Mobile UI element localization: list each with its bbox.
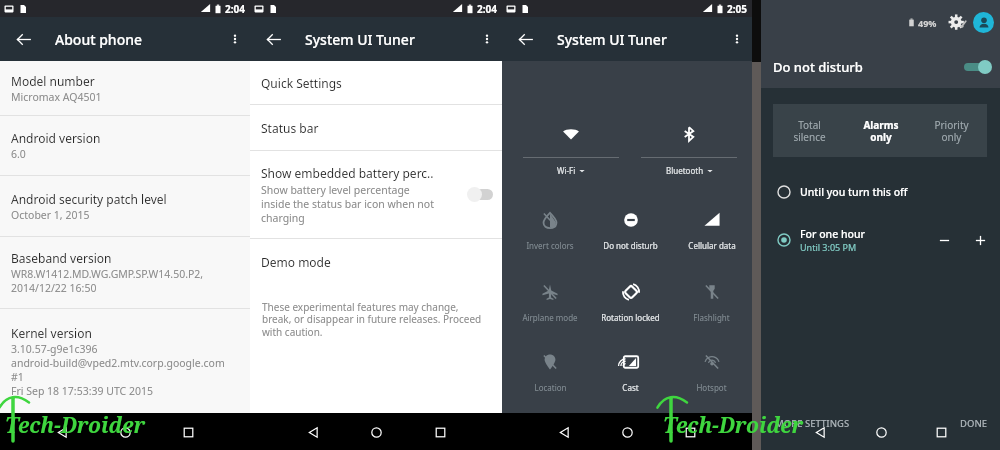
button[interactable]: More options bbox=[220, 17, 250, 61]
button[interactable]: Navigate up bbox=[508, 17, 542, 61]
button[interactable]: Rotation locked bbox=[590, 283, 671, 332]
staticText: Until 3:05 PM bbox=[800, 241, 857, 253]
staticText: Fri Sep 18 17:53:39 UTC 2015 bbox=[11, 384, 153, 398]
button[interactable]: Total silence bbox=[773, 104, 845, 157]
button[interactable]: Account bbox=[973, 12, 994, 33]
button[interactable]: Settings bbox=[948, 13, 968, 33]
staticText: Hotspot bbox=[696, 382, 727, 393]
button[interactable]: Cellular data bbox=[671, 211, 752, 260]
staticText: Cast bbox=[622, 382, 639, 393]
staticText: Android version bbox=[11, 130, 101, 146]
staticText: Bluetooth bbox=[666, 165, 704, 176]
button[interactable]: Bluetooth bbox=[630, 125, 748, 177]
staticText: System UI Tuner bbox=[557, 30, 667, 49]
button[interactable]: For one hour bbox=[761, 224, 1000, 256]
staticText: android-build@vped2.mtv.corp.google.com bbox=[11, 356, 225, 370]
button[interactable]: Flashlight bbox=[671, 283, 752, 332]
staticText: Cellular data bbox=[688, 240, 736, 251]
staticText: System UI Tuner bbox=[305, 30, 415, 49]
button[interactable]: Alarms only bbox=[845, 104, 916, 157]
button[interactable]: Do not disturb toggle bbox=[962, 59, 992, 75]
staticText: 2:04 bbox=[477, 2, 497, 16]
staticText: October 1, 2015 bbox=[11, 208, 90, 222]
button[interactable]: Kernel version bbox=[0, 309, 250, 413]
staticText: Android security patch level bbox=[11, 191, 167, 207]
staticText: Model number bbox=[11, 73, 95, 89]
button[interactable]: Recent apps bbox=[673, 415, 707, 449]
button[interactable]: Increase bbox=[969, 229, 991, 251]
button[interactable]: MORE SETTINGS bbox=[773, 415, 852, 432]
staticText: Show battery level percentage inside the… bbox=[261, 183, 434, 225]
button[interactable]: Invert colors bbox=[510, 211, 590, 260]
staticText: 2:05 bbox=[727, 2, 747, 16]
staticText: Flashlight bbox=[693, 312, 730, 323]
button[interactable]: Location bbox=[510, 353, 590, 402]
staticText: Kernel version bbox=[11, 325, 92, 341]
staticText: Total silence bbox=[793, 118, 826, 144]
button[interactable]: Navigate up bbox=[6, 17, 40, 61]
button[interactable]: DONE bbox=[958, 415, 990, 432]
button[interactable]: Back bbox=[296, 415, 330, 449]
staticText: 49% bbox=[918, 17, 937, 29]
staticText: Show embedded battery perc.. bbox=[261, 165, 434, 181]
button[interactable]: Back bbox=[803, 415, 837, 449]
staticText: Rotation locked bbox=[601, 312, 660, 323]
button[interactable]: Airplane mode bbox=[510, 283, 590, 332]
button[interactable]: Demo mode bbox=[250, 239, 502, 285]
staticText: WR8.W1412.MD.WG.GMP.SP.W14.50.P2, bbox=[11, 267, 204, 281]
button[interactable]: Home bbox=[864, 415, 898, 449]
staticText: Airplane mode bbox=[522, 312, 578, 323]
staticText: Wi-Fi bbox=[557, 165, 576, 176]
button[interactable]: Show embedded battery perc.. bbox=[250, 151, 502, 238]
button[interactable]: Quick Settings bbox=[250, 61, 502, 104]
staticText: Do not disturb bbox=[603, 240, 658, 251]
staticText: Until you turn this off bbox=[800, 185, 908, 199]
staticText: DONE bbox=[960, 417, 988, 430]
button[interactable]: Navigate up bbox=[256, 17, 290, 61]
staticText: Baseband version bbox=[11, 250, 112, 266]
staticText: These experimental features may change, … bbox=[262, 300, 482, 339]
button[interactable]: Home bbox=[610, 415, 644, 449]
button[interactable]: Wi-Fi bbox=[512, 125, 630, 177]
staticText: Location bbox=[534, 382, 567, 393]
staticText: Invert colors bbox=[526, 240, 574, 251]
button[interactable]: Recent apps bbox=[423, 415, 457, 449]
button[interactable]: Home bbox=[359, 415, 393, 449]
button[interactable]: Status bar bbox=[250, 105, 502, 150]
staticText: Tech-Droider bbox=[5, 411, 146, 440]
staticText: Alarms only bbox=[863, 118, 899, 144]
staticText: 6.0 bbox=[11, 147, 26, 161]
staticText: Status bar bbox=[261, 120, 319, 136]
button[interactable]: Decrease bbox=[933, 229, 955, 251]
button[interactable]: Baseband version bbox=[0, 237, 250, 308]
button[interactable]: Recent apps bbox=[924, 415, 958, 449]
button[interactable]: Until you turn this off bbox=[761, 177, 1000, 207]
button[interactable]: Back bbox=[547, 415, 581, 449]
button[interactable]: Android version bbox=[0, 116, 250, 175]
button[interactable]: Hotspot bbox=[671, 353, 752, 402]
staticText: About phone bbox=[55, 30, 143, 49]
button[interactable]: Home bbox=[108, 415, 142, 449]
staticText: Micromax AQ4501 bbox=[11, 90, 102, 104]
staticText: 3.10.57-g9e1c396 bbox=[11, 342, 98, 356]
button[interactable]: Priority only bbox=[916, 104, 987, 157]
button[interactable]: Model number bbox=[0, 61, 250, 115]
button[interactable]: More options bbox=[472, 17, 502, 61]
staticText: Quick Settings bbox=[261, 75, 342, 91]
staticText: Tech-Droider bbox=[663, 411, 804, 440]
button[interactable]: Toggle setting bbox=[467, 187, 493, 202]
staticText: 2014/12/22 16:50 bbox=[11, 281, 97, 295]
button[interactable]: Do not disturb bbox=[761, 45, 1000, 88]
staticText: MORE SETTINGS bbox=[775, 417, 850, 430]
staticText: Demo mode bbox=[261, 254, 331, 270]
staticText: #1 bbox=[11, 370, 24, 384]
staticText: Priority only bbox=[934, 118, 969, 144]
button[interactable]: Back bbox=[45, 415, 79, 449]
staticText: 2:04 bbox=[225, 2, 245, 16]
button[interactable]: More options bbox=[722, 17, 752, 61]
button[interactable]: Android security patch level bbox=[0, 176, 250, 236]
staticText: Do not disturb bbox=[773, 58, 863, 76]
button[interactable]: Cast bbox=[590, 353, 671, 402]
button[interactable]: Recent apps bbox=[171, 415, 205, 449]
button[interactable]: Do not disturb bbox=[590, 211, 671, 260]
